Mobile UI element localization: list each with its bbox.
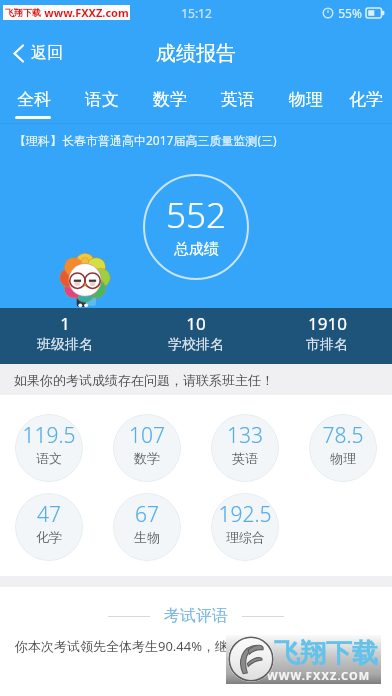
button[interactable]: 192.5 — [211, 493, 279, 561]
staticText: 119.5 — [22, 421, 76, 450]
staticText: 英语 — [232, 450, 258, 466]
staticText: 物理 — [289, 89, 323, 110]
staticText: 物理 — [330, 450, 356, 466]
staticText: 47 — [37, 500, 61, 529]
staticText: WWW.FXXZ.COM — [267, 668, 371, 683]
staticText: 552 — [166, 191, 226, 239]
staticText: 市排名 — [306, 336, 348, 354]
staticText: 1 — [60, 312, 70, 335]
staticText: 返回 — [31, 43, 63, 63]
staticText: 成绩报告 — [156, 41, 236, 66]
staticText: 192.5 — [218, 500, 272, 529]
staticText: 飞翔下载 — [5, 7, 41, 18]
staticText: 全科 — [17, 89, 51, 110]
staticText: 数学 — [153, 89, 187, 110]
staticText: 化学 — [36, 529, 62, 545]
staticText: 英语 — [221, 89, 255, 110]
button[interactable]: 返回 — [0, 33, 75, 73]
staticText: 数学 — [134, 450, 160, 466]
staticText: 107 — [129, 421, 165, 450]
staticText: 【理科】长春市普通高中2017届高三质量监测(三) — [14, 132, 277, 148]
button[interactable]: 1910 — [261, 308, 392, 364]
staticText: 语文 — [85, 89, 119, 110]
staticText: www.FXXZ.com — [44, 5, 129, 20]
staticText: 15:12 — [181, 5, 212, 21]
staticText: 语文 — [36, 450, 62, 466]
staticText: 67 — [135, 500, 159, 529]
button[interactable]: 1 — [0, 308, 130, 364]
button[interactable]: 物理 — [272, 81, 340, 124]
staticText: 78.5 — [322, 421, 364, 450]
staticText: 你本次考试领先全体考生90.44%，继续努力！ — [15, 637, 281, 655]
button[interactable]: 119.5 — [15, 414, 83, 482]
staticText: 总成绩 — [174, 240, 219, 259]
button[interactable]: 47 — [15, 493, 83, 561]
button[interactable]: 10 — [130, 308, 261, 364]
staticText: 133 — [227, 421, 263, 450]
staticText: 化学 — [349, 89, 383, 110]
staticText: 10 — [186, 312, 206, 335]
staticText: 考试评语 — [164, 606, 228, 626]
staticText: 飞翔下载 — [274, 637, 378, 670]
button[interactable]: 全科 — [0, 81, 68, 124]
staticText: 理综合 — [226, 529, 265, 545]
staticText: 1910 — [308, 312, 347, 335]
button[interactable]: 78.5 — [309, 414, 377, 482]
staticText: 班级排名 — [37, 336, 93, 354]
staticText: 如果你的考试成绩存在问题，请联系班主任！ — [14, 372, 274, 388]
button[interactable]: 数学 — [136, 81, 204, 124]
button[interactable]: 英语 — [204, 81, 272, 124]
staticText: 生物 — [134, 529, 160, 545]
button[interactable]: 67 — [113, 493, 181, 561]
staticText: 学校排名 — [168, 336, 224, 354]
button[interactable]: 语文 — [68, 81, 136, 124]
button[interactable]: 133 — [211, 414, 279, 482]
button[interactable]: 107 — [113, 414, 181, 482]
staticText: 55% — [338, 5, 362, 21]
button[interactable]: 化学 — [340, 81, 392, 124]
